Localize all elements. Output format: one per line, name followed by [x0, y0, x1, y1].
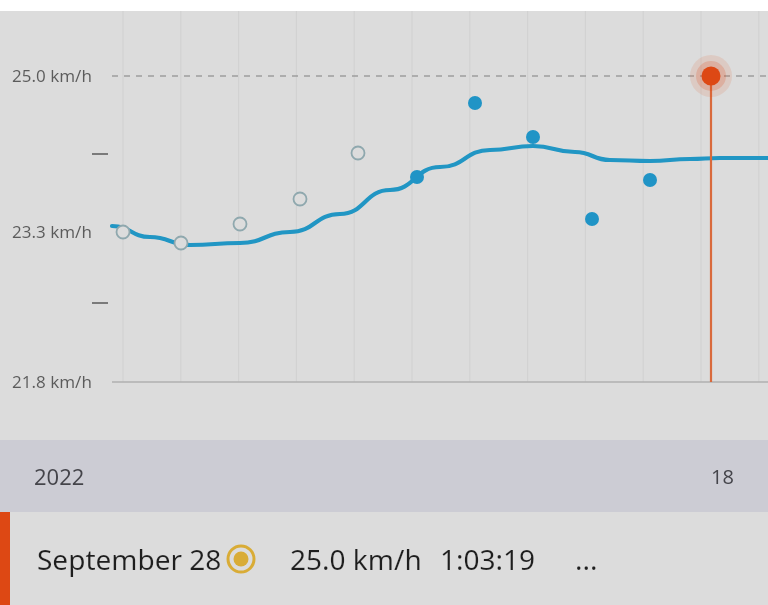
other: Personal record: [228, 546, 254, 572]
staticText: 1:03:19: [440, 540, 536, 578]
staticText: ...: [575, 540, 598, 578]
button[interactable]: 2022: [0, 440, 768, 512]
button[interactable]: September 28: [0, 512, 768, 605]
staticText: 18: [711, 463, 734, 490]
staticText: 25.0 km/h: [12, 64, 92, 87]
staticText: 25.0 km/h: [290, 540, 422, 578]
button[interactable]: More options: [566, 512, 606, 605]
button[interactable]: 25.0 km/h: [0, 11, 768, 440]
staticText: 2022: [34, 461, 85, 491]
staticText: 21.8 km/h: [12, 370, 92, 393]
staticText: 23.3 km/h: [12, 220, 92, 243]
staticText: September 28: [37, 540, 222, 578]
